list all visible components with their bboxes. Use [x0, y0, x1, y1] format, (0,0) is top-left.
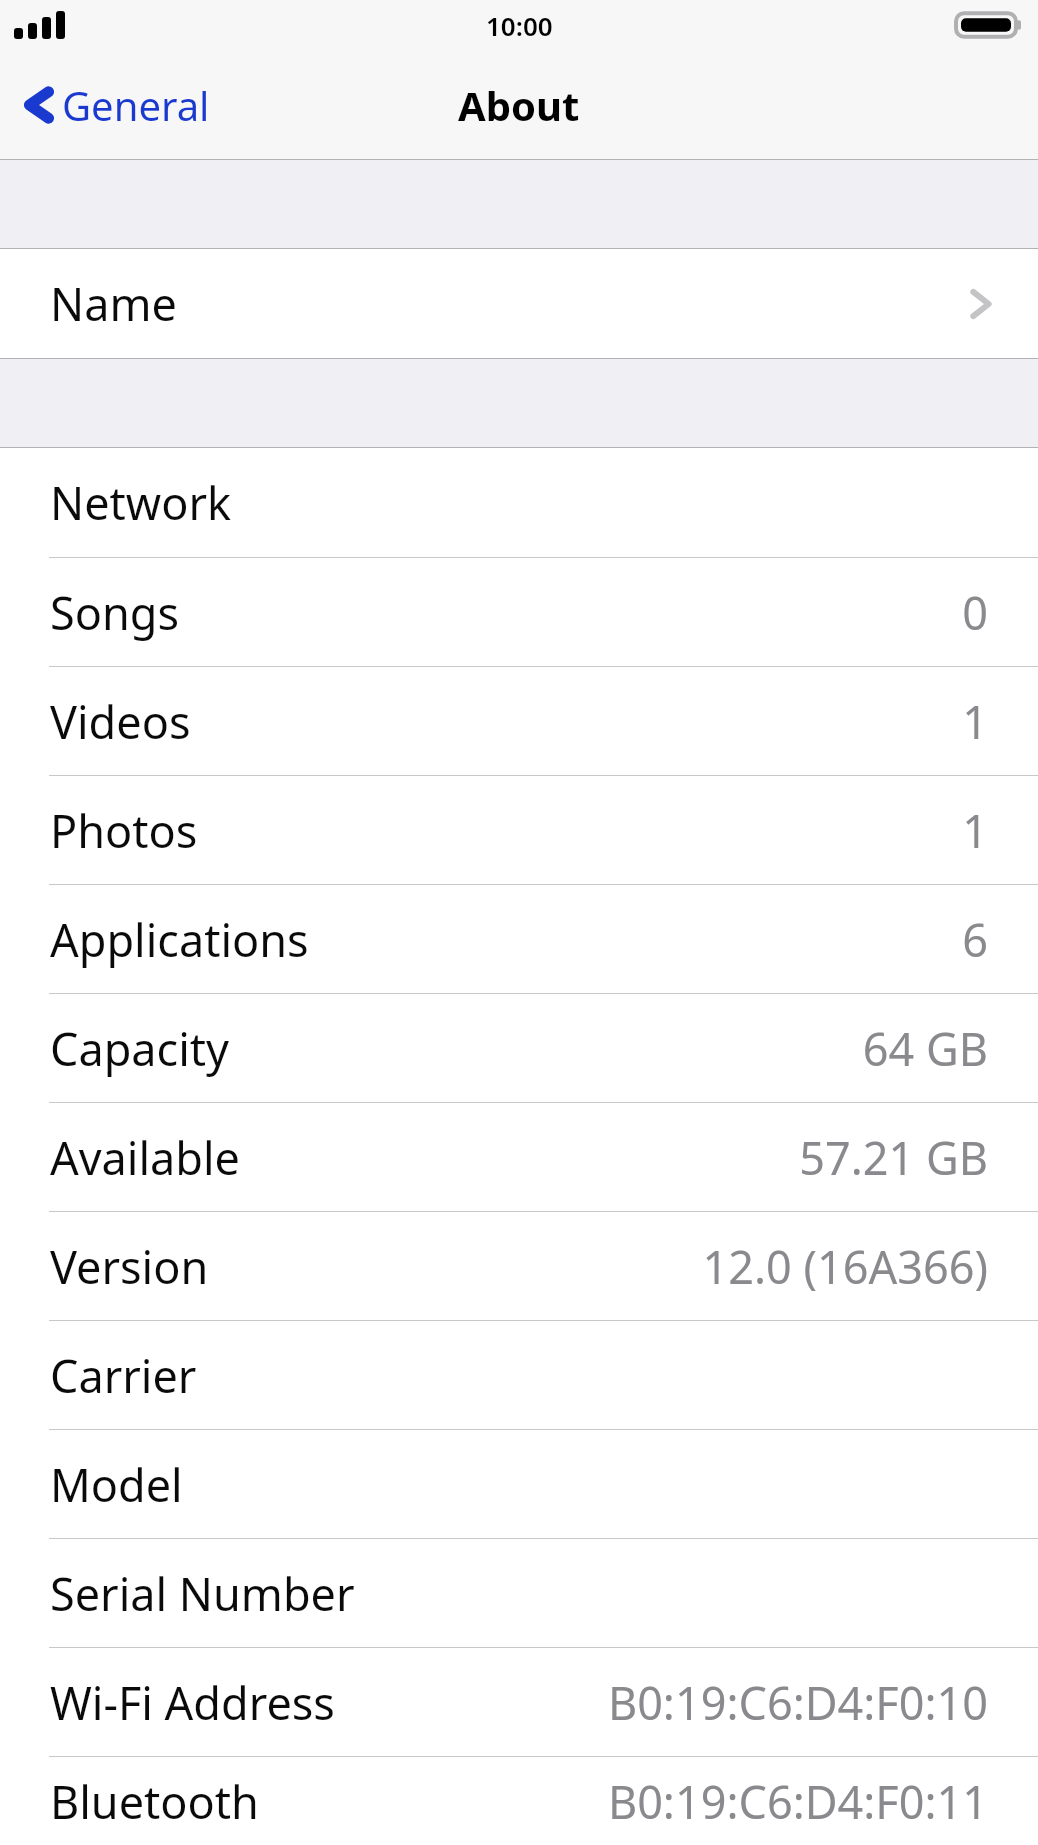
- staticText: Version: [50, 1236, 209, 1297]
- staticText: 0: [962, 582, 988, 643]
- button[interactable]: Capacity: [0, 994, 1038, 1102]
- staticText: 64 GB: [862, 1018, 988, 1079]
- staticText: Videos: [50, 691, 191, 752]
- button[interactable]: Carrier: [0, 1321, 1038, 1429]
- staticText: About: [458, 78, 580, 132]
- button[interactable]: Photos: [0, 776, 1038, 884]
- button[interactable]: Available: [0, 1103, 1038, 1211]
- staticText: Name: [50, 273, 177, 334]
- staticText: Applications: [50, 909, 309, 970]
- button[interactable]: Network: [0, 448, 1038, 557]
- staticText: Wi-Fi Address: [50, 1672, 335, 1733]
- staticText: 1: [962, 800, 988, 861]
- staticText: 10:00: [486, 8, 553, 43]
- button[interactable]: Videos: [0, 667, 1038, 775]
- staticText: 1: [962, 691, 988, 752]
- staticText: B0:19:C6:D4:F0:10: [607, 1672, 988, 1733]
- staticText: Photos: [50, 800, 198, 861]
- staticText: 6: [962, 909, 988, 970]
- staticText: Songs: [50, 582, 179, 643]
- button[interactable]: Songs: [0, 558, 1038, 666]
- button[interactable]: Wi-Fi Address: [0, 1648, 1038, 1756]
- button[interactable]: General: [0, 70, 226, 140]
- button[interactable]: Applications: [0, 885, 1038, 993]
- staticText: Network: [50, 472, 232, 533]
- staticText: General: [62, 78, 210, 132]
- staticText: Bluetooth: [50, 1771, 259, 1832]
- staticText: Serial Number: [50, 1563, 355, 1624]
- staticText: 12.0 (16A366): [702, 1236, 988, 1297]
- staticText: 57.21 GB: [799, 1127, 988, 1188]
- staticText: Available: [50, 1127, 240, 1188]
- button[interactable]: Version: [0, 1212, 1038, 1320]
- staticText: Capacity: [50, 1018, 230, 1079]
- button[interactable]: Serial Number: [0, 1539, 1038, 1647]
- staticText: Model: [50, 1454, 183, 1515]
- button[interactable]: Bluetooth: [0, 1757, 1038, 1845]
- staticText: Carrier: [50, 1345, 197, 1406]
- staticText: B0:19:C6:D4:F0:11: [607, 1771, 988, 1832]
- button[interactable]: Model: [0, 1430, 1038, 1538]
- button[interactable]: Name: [0, 249, 1038, 358]
